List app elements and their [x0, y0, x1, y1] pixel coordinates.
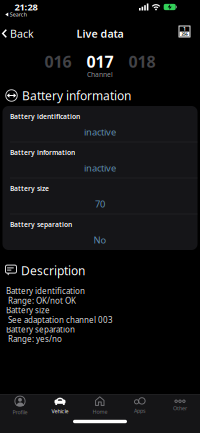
button[interactable]: Back — [2, 26, 34, 41]
staticText: Battery size — [6, 305, 50, 315]
staticText: Search — [10, 11, 27, 18]
button[interactable]: Battery identification — [0, 0, 200, 433]
staticText: 21:28 — [14, 1, 37, 13]
button[interactable]: 018 — [128, 51, 155, 72]
staticText: Battery identification — [10, 112, 80, 121]
button[interactable]: Profile — [0, 394, 40, 416]
staticText: Description — [21, 262, 85, 278]
staticText: Channel — [87, 70, 113, 79]
staticText: Apps — [134, 407, 146, 414]
staticText: 70 — [95, 198, 105, 210]
staticText: Battery information — [10, 148, 75, 157]
staticText: Profile — [12, 409, 27, 416]
staticText: No — [93, 234, 106, 246]
staticText: Battery information — [22, 87, 131, 103]
staticText: Live data — [76, 26, 123, 41]
staticText: Other — [173, 405, 187, 412]
staticText: Battery separation — [6, 324, 75, 335]
staticText: Range: yes/no — [6, 334, 62, 344]
staticText: Vehicle — [51, 408, 68, 415]
staticText: Back — [10, 26, 34, 41]
staticText: 017 — [86, 51, 113, 72]
staticText: 256 — [181, 31, 187, 36]
staticText: 018 — [128, 51, 155, 72]
button[interactable]: Display mode — [178, 25, 190, 37]
staticText: 016 — [44, 51, 71, 72]
staticText: Range: OK/not OK — [6, 295, 76, 306]
staticText: inactive — [84, 162, 116, 174]
staticText: Battery size — [10, 184, 49, 193]
staticText: Home — [92, 408, 107, 415]
staticText: See adaptation channel 003 — [6, 314, 113, 325]
button[interactable]: 016 — [44, 51, 71, 72]
staticText: Battery separation — [10, 220, 72, 229]
button[interactable]: Battery separation — [0, 0, 200, 433]
button[interactable]: Other — [160, 394, 200, 416]
staticText: 1 — [183, 25, 186, 32]
button[interactable]: Apps — [120, 394, 160, 416]
button[interactable]: Battery information — [0, 0, 200, 433]
button[interactable]: Battery size — [0, 0, 200, 433]
staticText: Battery identification — [6, 286, 85, 296]
button[interactable]: Home — [80, 394, 120, 416]
button[interactable]: Vehicle — [40, 394, 80, 416]
staticText: inactive — [84, 126, 116, 138]
